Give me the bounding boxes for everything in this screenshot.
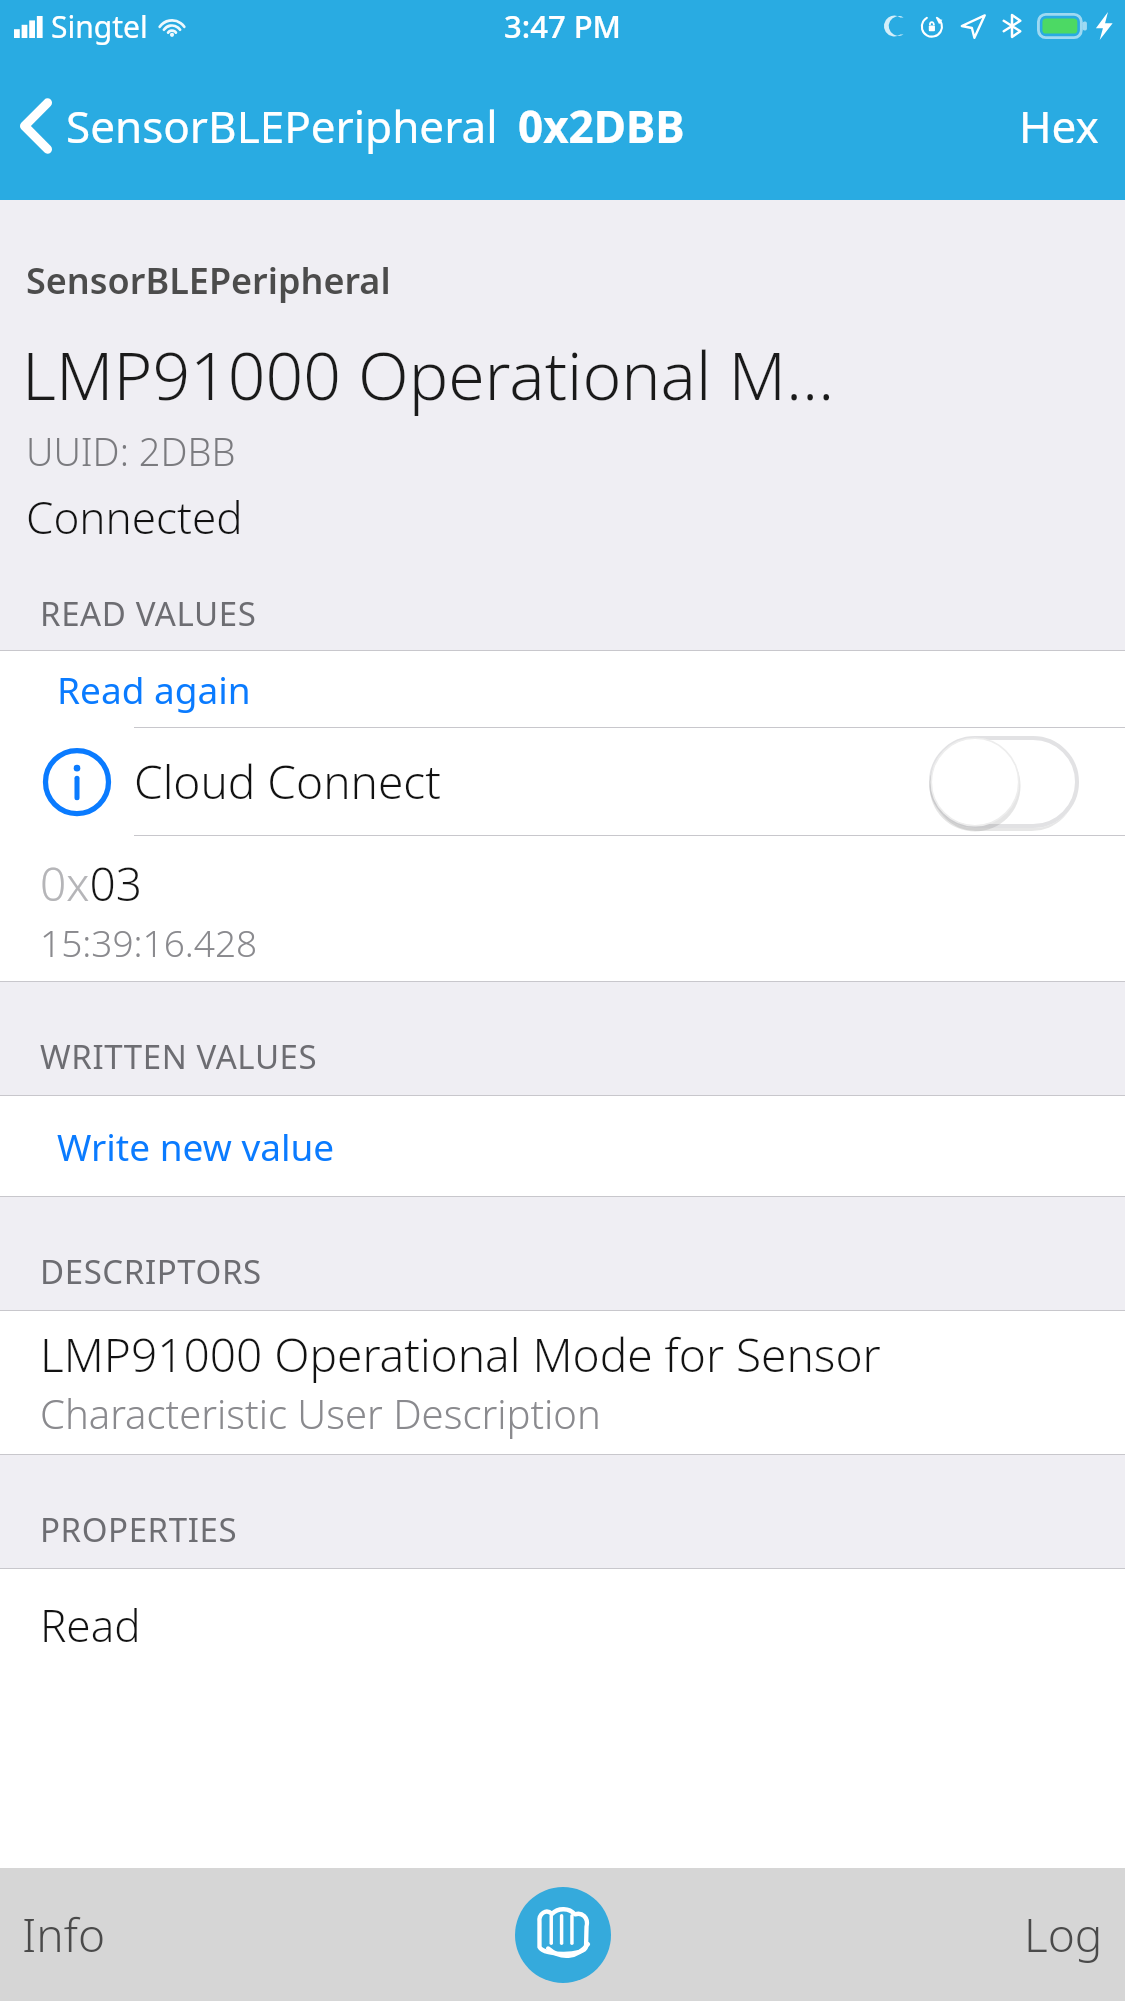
staticText: Hex <box>1019 96 1099 156</box>
other: Info <box>42 747 112 817</box>
staticText: Cloud Connect <box>134 750 441 813</box>
staticText: Log <box>1024 1903 1103 1966</box>
staticText: DESCRIPTORS <box>40 1249 262 1294</box>
button[interactable]: LMP91000 Operational Mode for Sensor <box>0 1311 1125 1454</box>
staticText: LMP91000 Operational Mode for Sensor <box>40 1323 881 1386</box>
staticText: LMP91000 Operational M… <box>22 329 835 419</box>
button[interactable]: Hex <box>993 78 1125 174</box>
button[interactable]: 0x03 <box>0 836 1125 981</box>
button[interactable]: Cloud Connect toggle <box>929 736 1079 828</box>
staticText: UUID: 2DBB <box>26 425 236 477</box>
button[interactable]: Read <box>0 1569 1125 1868</box>
staticText: PROPERTIES <box>40 1507 238 1552</box>
staticText: WRITTEN VALUES <box>40 1034 318 1079</box>
other: Back <box>18 97 54 155</box>
staticText: READ VALUES <box>40 591 257 636</box>
staticText: Connected <box>26 487 243 547</box>
button[interactable]: Read again <box>0 651 1125 727</box>
button[interactable]: Bump <box>515 1887 611 1983</box>
staticText: 0x2DBB <box>518 96 685 156</box>
staticText: 0x03 <box>40 852 142 915</box>
button[interactable]: Log <box>984 1885 1125 1984</box>
button[interactable]: Info <box>0 728 1125 835</box>
staticText: Characteristic User Description <box>40 1386 601 1440</box>
staticText: Read again <box>57 664 251 714</box>
staticText: Singtel <box>51 6 148 47</box>
staticText: Info <box>22 1903 106 1966</box>
staticText: SensorBLEPeripheral <box>66 96 498 156</box>
button[interactable]: Back <box>14 96 695 156</box>
staticText: 3:47 PM <box>504 5 622 47</box>
staticText: SensorBLEPeripheral <box>26 256 391 305</box>
staticText: Write new value <box>57 1121 335 1171</box>
button[interactable]: Write new value <box>0 1096 1125 1196</box>
staticText: 15:39:16.428 <box>40 917 258 967</box>
button[interactable]: Info <box>0 1885 146 1984</box>
staticText: Read <box>40 1595 141 1655</box>
